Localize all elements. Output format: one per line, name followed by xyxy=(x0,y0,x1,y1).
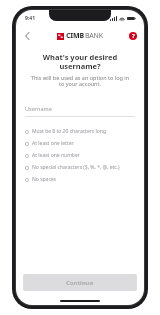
staticText: This will be used as an option to log in… xyxy=(30,74,130,88)
staticText: Must be 8 to 20 characters long xyxy=(32,128,106,135)
staticText: Username xyxy=(25,105,52,112)
staticText: No spaces xyxy=(32,176,57,183)
button[interactable]: Username xyxy=(25,105,135,117)
staticText: Continue xyxy=(66,279,94,287)
staticText: At least one letter xyxy=(32,140,74,147)
button[interactable]: Continue xyxy=(23,274,137,291)
staticText: BANK xyxy=(85,31,103,41)
staticText: What's your desired username? xyxy=(25,52,135,71)
staticText: CIMB xyxy=(66,31,84,41)
staticText: ? xyxy=(132,32,135,40)
staticText: No special characters ($, %, *, @, etc.) xyxy=(32,164,120,171)
staticText: 9:41 xyxy=(25,15,35,22)
button[interactable]: Back xyxy=(20,29,34,43)
staticText: At least one number xyxy=(32,152,80,159)
button[interactable]: Help xyxy=(126,29,140,43)
